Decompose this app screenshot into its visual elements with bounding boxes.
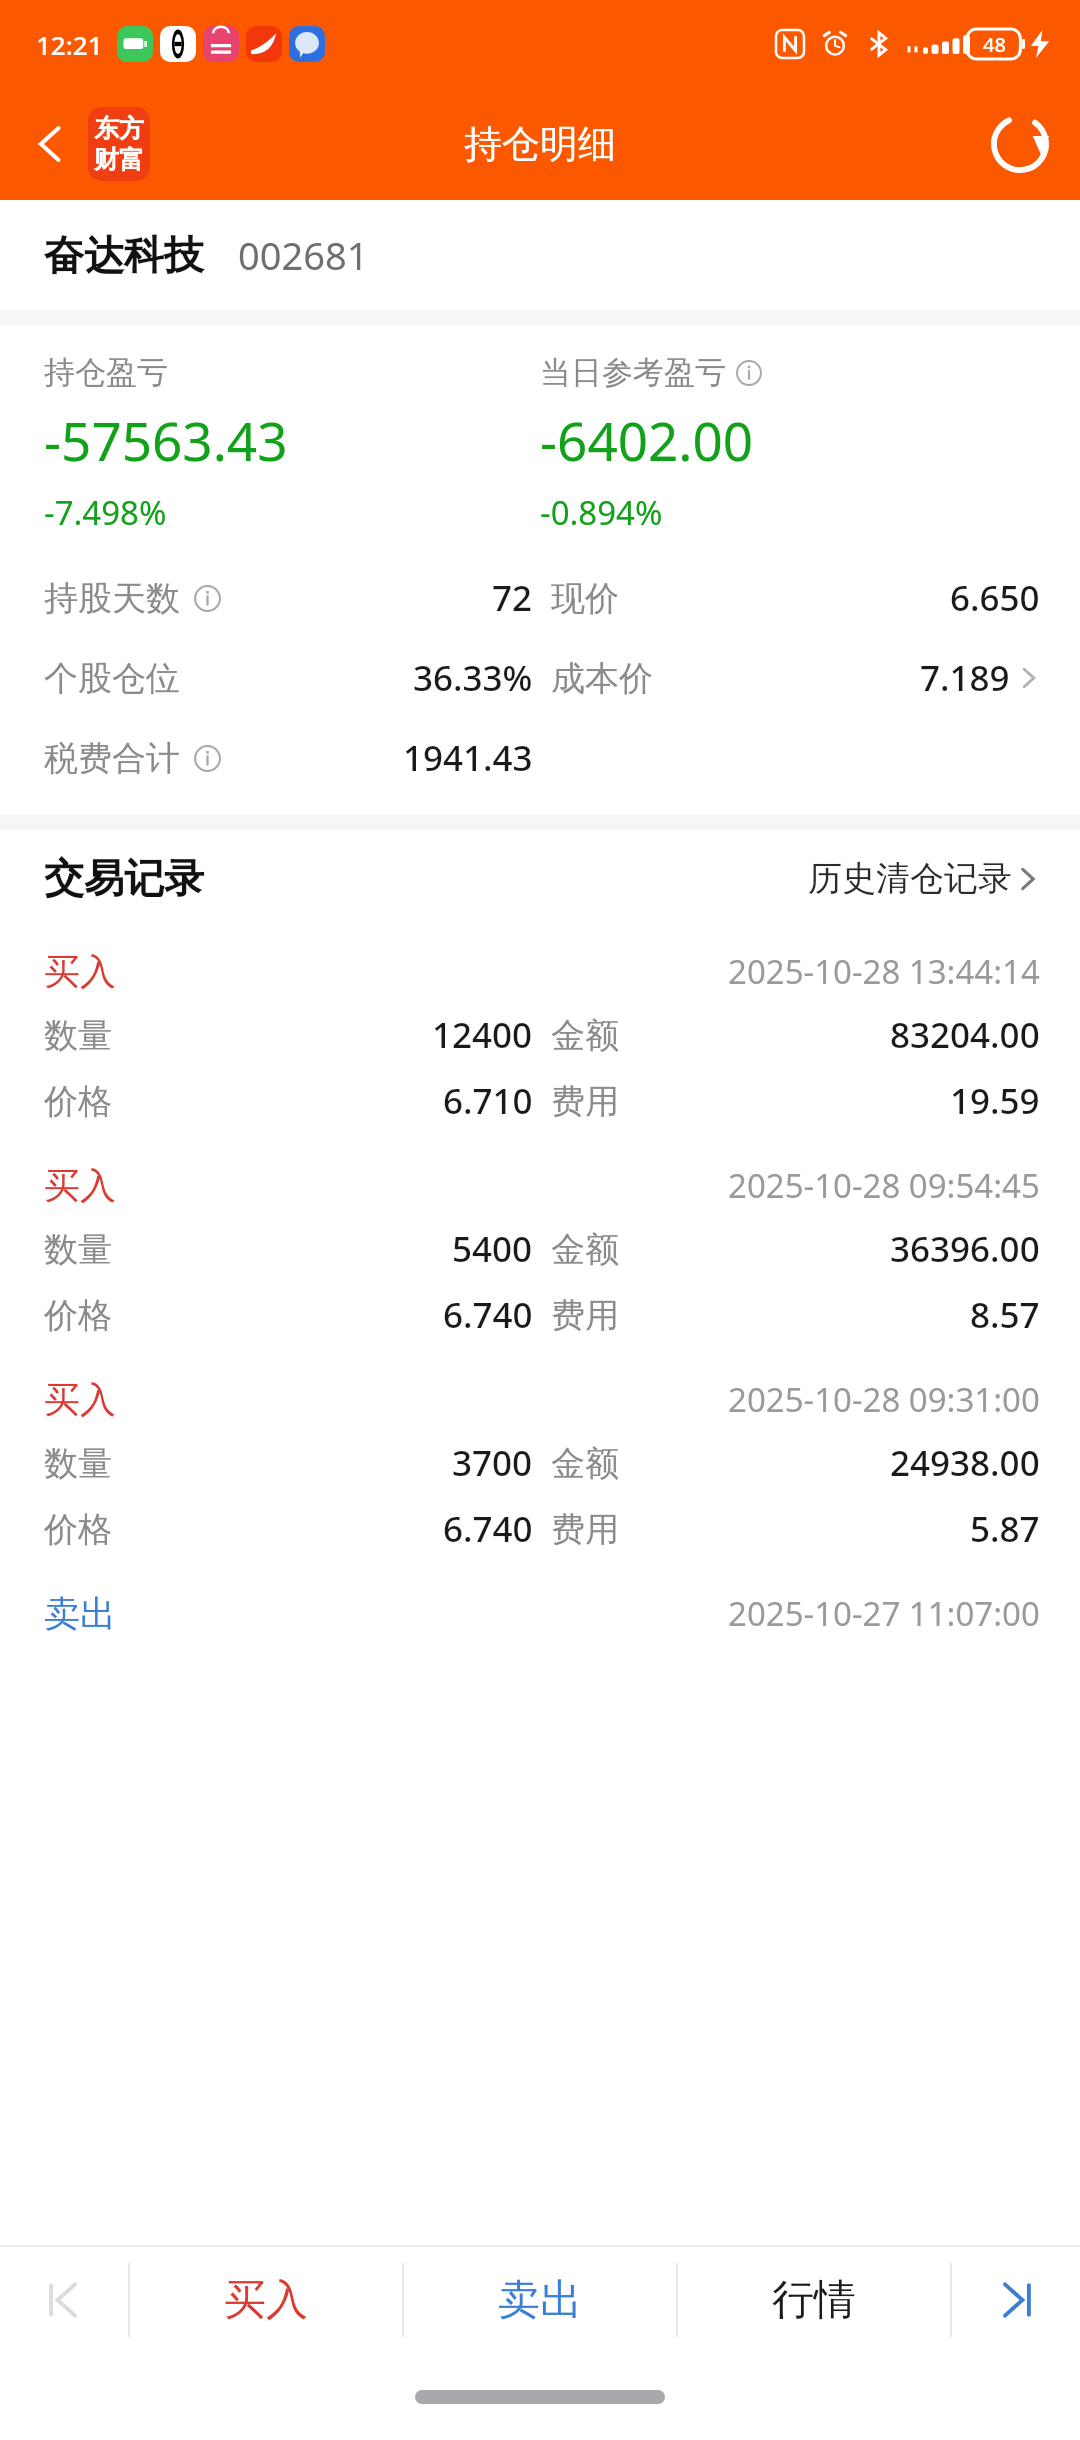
staticText: 费用 <box>551 1508 619 1551</box>
staticText: 卖出 <box>44 1591 116 1636</box>
staticText: 持股天数 <box>44 577 180 620</box>
staticText: 19.59 <box>950 1077 1040 1125</box>
staticText: 12:21 <box>36 27 103 62</box>
staticText: 买入 <box>224 2274 308 2327</box>
button[interactable]: Previous <box>0 2246 128 2354</box>
staticText: 行情 <box>772 2274 856 2327</box>
staticText: 价格 <box>44 1080 112 1123</box>
staticText: -57563.43 <box>44 404 288 476</box>
button[interactable]: 买入 <box>0 1140 1080 1354</box>
staticText: 2025-10-28 09:31:00 <box>728 1377 1040 1422</box>
staticText: 成本价 <box>551 657 653 700</box>
staticText: 72 <box>492 574 533 622</box>
staticText: 1941.43 <box>403 734 533 782</box>
staticText: 交易记录 <box>44 853 204 903</box>
staticText: 48 <box>983 31 1006 58</box>
button[interactable]: 卖出 <box>404 2246 676 2354</box>
staticText: 买入 <box>44 1163 116 1208</box>
staticText: 12400 <box>432 1011 533 1059</box>
staticText: 费用 <box>551 1080 619 1123</box>
button[interactable]: Refresh <box>960 88 1080 200</box>
staticText: 奋达科技 <box>44 230 204 280</box>
staticText: 36396.00 <box>890 1225 1040 1273</box>
staticText: -0.894% <box>540 490 663 535</box>
button[interactable]: Next <box>952 2246 1080 2354</box>
staticText: -7.498% <box>44 490 167 535</box>
staticText: 数量 <box>44 1228 112 1271</box>
staticText: 6.740 <box>443 1505 533 1553</box>
button[interactable]: 历史清仓记录 <box>808 857 1040 900</box>
staticText: 002681 <box>238 229 369 281</box>
staticText: 持仓盈亏 <box>44 353 168 392</box>
staticText: 2025-10-28 09:54:45 <box>728 1163 1040 1208</box>
button[interactable]: 买入 <box>0 1354 1080 1568</box>
staticText: 5400 <box>452 1225 533 1273</box>
button[interactable]: 买入 <box>130 2246 402 2354</box>
staticText: -6402.00 <box>540 404 754 476</box>
staticText: 2025-10-28 13:44:14 <box>728 949 1040 994</box>
staticText: 卖出 <box>498 2274 582 2327</box>
staticText: 36.33% <box>413 654 533 702</box>
staticText: 个股仓位 <box>44 657 180 700</box>
staticText: 5.87 <box>970 1505 1040 1553</box>
staticText: 数量 <box>44 1014 112 1057</box>
staticText: 东方 <box>94 113 144 144</box>
staticText: 6.650 <box>950 574 1040 622</box>
staticText: 7.189 <box>920 654 1010 702</box>
staticText: 金额 <box>551 1228 619 1271</box>
staticText: 价格 <box>44 1508 112 1551</box>
staticText: 24938.00 <box>890 1439 1040 1487</box>
staticText: 3700 <box>452 1439 533 1487</box>
staticText: 税费合计 <box>44 737 180 780</box>
staticText: 买入 <box>44 949 116 994</box>
staticText: 财富 <box>94 144 144 175</box>
staticText: 现价 <box>551 577 619 620</box>
staticText: 当日参考盈亏 <box>540 353 726 392</box>
staticText: 83204.00 <box>890 1011 1040 1059</box>
button[interactable]: 卖出 <box>0 1568 1080 1644</box>
staticText: 价格 <box>44 1294 112 1337</box>
button[interactable]: 行情 <box>678 2246 950 2354</box>
button[interactable]: 买入 <box>0 926 1080 1140</box>
staticText: 持仓明细 <box>464 120 616 168</box>
staticText: 金额 <box>551 1014 619 1057</box>
staticText: 历史清仓记录 <box>808 857 1012 900</box>
staticText: 8.57 <box>970 1291 1040 1339</box>
staticText: 6.740 <box>443 1291 533 1339</box>
staticText: 费用 <box>551 1294 619 1337</box>
staticText: 6.710 <box>443 1077 533 1125</box>
staticText: 金额 <box>551 1442 619 1485</box>
button[interactable]: Back <box>0 88 200 200</box>
staticText: 数量 <box>44 1442 112 1485</box>
staticText: 买入 <box>44 1377 116 1422</box>
staticText: 2025-10-27 11:07:00 <box>728 1591 1040 1636</box>
